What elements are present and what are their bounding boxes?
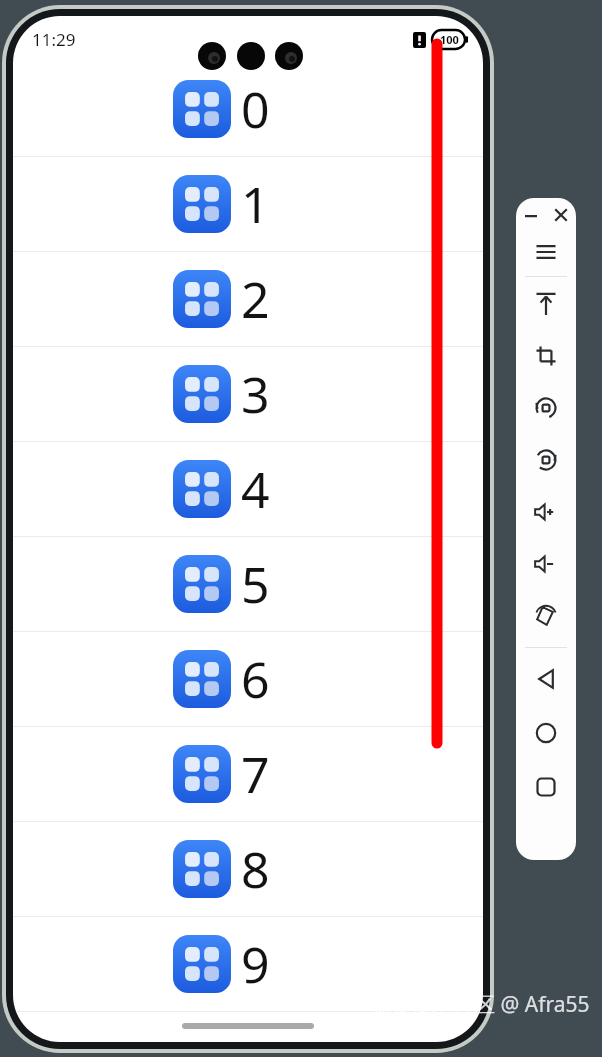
staticText: 100 (440, 32, 459, 47)
button[interactable]: Volume up (529, 495, 563, 529)
staticText: 1 (241, 170, 270, 238)
staticText: 3 (241, 360, 270, 428)
button[interactable]: 9 (13, 917, 483, 1012)
button[interactable]: Volume down (529, 547, 563, 581)
button[interactable]: Menu (529, 235, 563, 269)
staticText: 4 (241, 455, 270, 523)
staticText: 2 (241, 265, 270, 333)
staticText: 9 (241, 930, 270, 998)
button[interactable]: 4 (13, 442, 483, 537)
staticText: 11:29 (32, 28, 76, 51)
button[interactable]: 7 (13, 727, 483, 822)
button[interactable]: Home (529, 716, 563, 750)
staticText: 8 (241, 835, 270, 903)
staticText: 5 (241, 550, 270, 618)
button[interactable]: Rotate screen (529, 599, 563, 633)
button[interactable]: Upload (529, 287, 563, 321)
button[interactable]: Back (529, 662, 563, 696)
staticText: 6 (241, 645, 270, 713)
button[interactable]: 5 (13, 537, 483, 632)
button[interactable]: 8 (13, 822, 483, 917)
button[interactable]: Rotate left (529, 391, 563, 425)
button[interactable]: 0 (13, 62, 483, 157)
button[interactable]: Recents (529, 770, 563, 804)
button[interactable]: Crop (529, 339, 563, 373)
staticText: 7 (241, 740, 270, 808)
button[interactable]: Minimize (519, 203, 543, 227)
button[interactable]: 2 (13, 252, 483, 347)
button[interactable]: 3 (13, 347, 483, 442)
button[interactable]: Rotate right (529, 443, 563, 477)
button[interactable]: Close (549, 203, 573, 227)
button[interactable]: 1 (13, 157, 483, 252)
button[interactable]: 6 (13, 632, 483, 727)
staticText: 0 (241, 75, 270, 143)
staticText: 掘金技术社区 @ Afra55 (369, 990, 590, 1019)
